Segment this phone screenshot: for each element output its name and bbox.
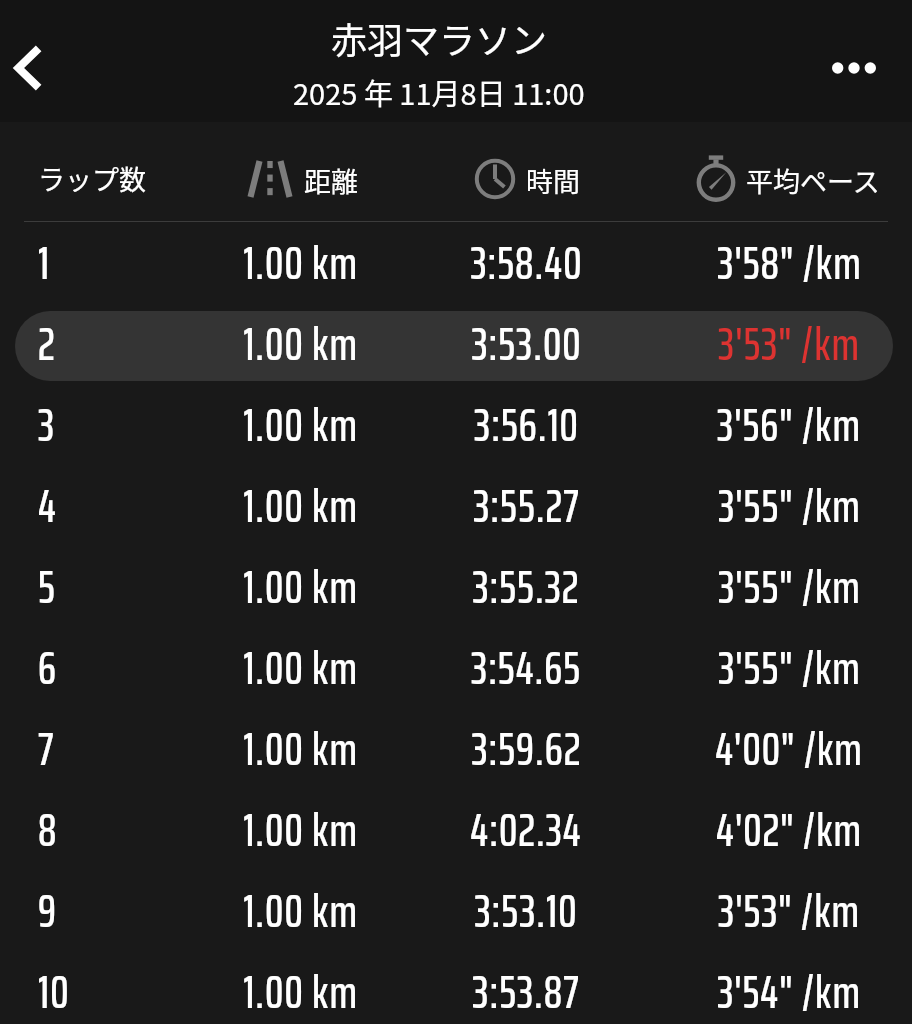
- staticText: 1.00 km: [243, 311, 358, 378]
- button[interactable]: More options: [822, 36, 886, 100]
- staticText: 7: [38, 716, 55, 783]
- staticText: 1: [38, 230, 51, 297]
- button[interactable]: 6: [15, 635, 893, 705]
- button[interactable]: 7: [15, 716, 893, 786]
- staticText: 3'58" /km: [717, 230, 862, 297]
- staticText: 9: [38, 878, 57, 945]
- button[interactable]: 4: [15, 473, 893, 543]
- staticText: 10: [38, 959, 70, 1018]
- staticText: 3'55" /km: [718, 554, 861, 621]
- staticText: 1.00 km: [243, 959, 358, 1018]
- staticText: 3:55.27: [473, 473, 580, 540]
- staticText: 1.00 km: [243, 230, 358, 297]
- staticText: 3:55.32: [472, 554, 580, 621]
- staticText: 4: [38, 473, 57, 540]
- button[interactable]: 9: [15, 878, 893, 948]
- staticText: 1.00 km: [243, 554, 358, 621]
- staticText: 3'56" /km: [717, 392, 861, 459]
- staticText: 3'53" /km: [718, 311, 860, 378]
- button[interactable]: 5: [15, 554, 893, 624]
- staticText: 2: [38, 311, 56, 378]
- button[interactable]: 3: [15, 392, 893, 462]
- staticText: 3:59.62: [471, 716, 582, 783]
- staticText: ラップ数: [38, 159, 146, 198]
- staticText: 3'55" /km: [718, 635, 861, 702]
- staticText: 6: [38, 635, 57, 702]
- staticText: 1.00 km: [243, 635, 358, 702]
- staticText: 1.00 km: [243, 878, 358, 945]
- button[interactable]: 8: [15, 797, 893, 867]
- button[interactable]: Back: [0, 32, 64, 104]
- staticText: 時間: [526, 161, 580, 200]
- staticText: 3:53.00: [471, 311, 582, 378]
- staticText: 4:02.34: [470, 797, 582, 864]
- staticText: 平均ペース: [746, 161, 880, 200]
- staticText: 3: [38, 392, 56, 459]
- staticText: 3:56.10: [474, 392, 579, 459]
- staticText: 1.00 km: [243, 716, 358, 783]
- staticText: 3:54.65: [471, 635, 581, 702]
- staticText: 3'53" /km: [718, 878, 860, 945]
- staticText: 8: [38, 797, 58, 864]
- staticText: 1.00 km: [243, 473, 358, 540]
- staticText: 距離: [304, 161, 358, 200]
- staticText: 赤羽マラソン: [331, 12, 548, 64]
- button[interactable]: 1: [15, 230, 893, 300]
- staticText: 4'00" /km: [715, 716, 863, 783]
- staticText: 5: [38, 554, 56, 621]
- staticText: 3:53.10: [474, 878, 578, 945]
- button[interactable]: 2: [15, 311, 893, 381]
- staticText: 4'02" /km: [716, 797, 862, 864]
- staticText: 3'54" /km: [717, 959, 861, 1018]
- staticText: 3:53.87: [472, 959, 580, 1018]
- button[interactable]: 10: [15, 959, 893, 1021]
- staticText: 3'55" /km: [718, 473, 861, 540]
- staticText: 3:58.40: [470, 230, 583, 297]
- staticText: 2025 年 11月8日 11:00: [293, 71, 585, 113]
- staticText: 1.00 km: [243, 392, 358, 459]
- staticText: 1.00 km: [243, 797, 358, 864]
